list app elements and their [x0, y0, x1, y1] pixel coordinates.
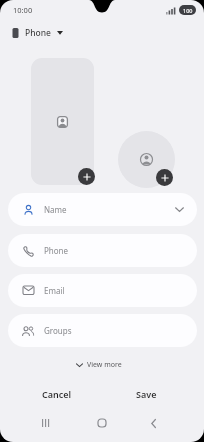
button[interactable]: Phone [8, 234, 197, 267]
button[interactable] [36, 414, 54, 432]
staticText: 100 [183, 7, 193, 14]
staticText: Save [136, 388, 157, 400]
button[interactable] [156, 169, 173, 186]
staticText: Phone [44, 245, 69, 256]
button[interactable]: Groups [8, 314, 197, 347]
staticText: Email [44, 285, 65, 296]
button[interactable]: Email [8, 274, 197, 307]
button[interactable] [118, 131, 175, 188]
staticText: Cancel [42, 388, 72, 400]
button[interactable]: Save [111, 383, 181, 405]
button[interactable] [31, 58, 94, 185]
button[interactable]: View more [76, 359, 122, 371]
button[interactable]: Name [8, 193, 197, 226]
button[interactable]: Cancel [22, 383, 92, 405]
button[interactable] [93, 414, 111, 432]
button[interactable] [78, 168, 95, 185]
staticText: Groups [44, 325, 72, 336]
staticText: View more [87, 360, 122, 370]
staticText: Name [44, 204, 67, 215]
button[interactable]: Phone [12, 25, 63, 41]
button[interactable] [144, 414, 162, 432]
staticText: 10:00 [13, 5, 33, 15]
staticText: Phone [25, 27, 51, 39]
